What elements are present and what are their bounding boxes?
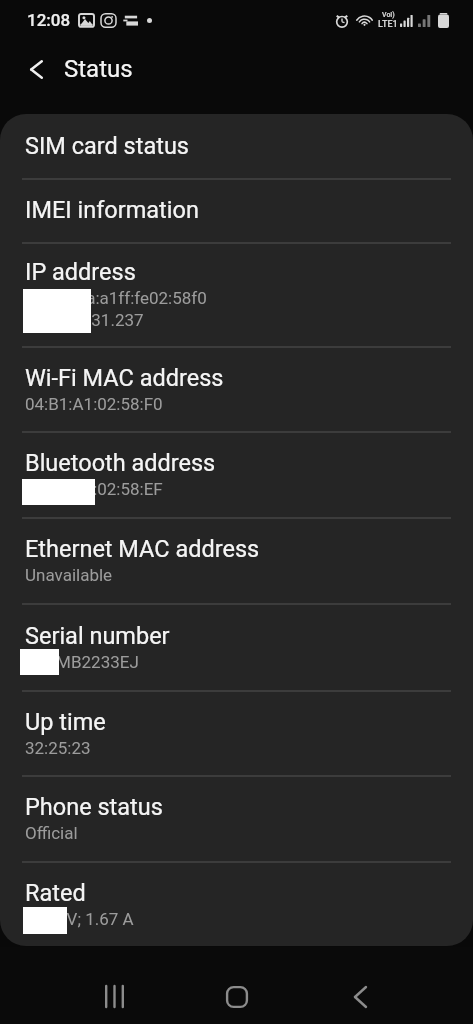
button[interactable]: IMEI information	[0, 178, 473, 242]
button[interactable]: Up time	[0, 690, 473, 775]
button[interactable]: Navigate up	[18, 51, 54, 87]
button[interactable]: Recent apps	[86, 968, 143, 1024]
staticText: Ethernet MAC address	[25, 535, 260, 563]
staticText: Official	[25, 823, 78, 843]
staticText: 04:B1:A1:02:58:EF	[25, 479, 163, 499]
staticText: Status	[64, 55, 133, 83]
button[interactable]: Bluetooth address	[0, 431, 473, 517]
button[interactable]: Phone status	[0, 775, 473, 861]
staticText: 9.00 V; 1.67 A	[25, 909, 134, 929]
staticText: Bluetooth address	[25, 449, 216, 477]
staticText: VoI)	[382, 11, 395, 19]
button[interactable]: Back	[332, 968, 389, 1024]
staticText: Rated	[25, 879, 86, 907]
staticText: R5CMB2233EJ	[25, 652, 139, 672]
staticText: Serial number	[25, 622, 170, 650]
button[interactable]: Home	[208, 968, 265, 1024]
staticText: Up time	[25, 708, 106, 736]
staticText: fe80::b4a:a1ff:fe02:58f0	[25, 288, 207, 308]
staticText: 192.168.31.237	[25, 310, 144, 330]
staticText: IP address	[25, 258, 136, 286]
button[interactable]: SIM card status	[0, 114, 473, 178]
staticText: 12:08	[27, 10, 71, 30]
button[interactable]: Ethernet MAC address	[0, 517, 473, 603]
staticText: SIM card status	[25, 132, 189, 160]
staticText: 04:B1:A1:02:58:F0	[25, 394, 163, 414]
staticText: LTE1	[378, 19, 398, 30]
button[interactable]: IP address	[0, 242, 473, 346]
staticText: 32:25:23	[25, 738, 91, 758]
button[interactable]: Serial number	[0, 603, 473, 690]
staticText: Unavailable	[25, 565, 113, 585]
button[interactable]: Wi-Fi MAC address	[0, 346, 473, 431]
staticText: Phone status	[25, 793, 163, 821]
staticText: IMEI information	[25, 196, 199, 224]
button[interactable]: Rated	[0, 861, 473, 946]
staticText: Wi-Fi MAC address	[25, 364, 224, 392]
